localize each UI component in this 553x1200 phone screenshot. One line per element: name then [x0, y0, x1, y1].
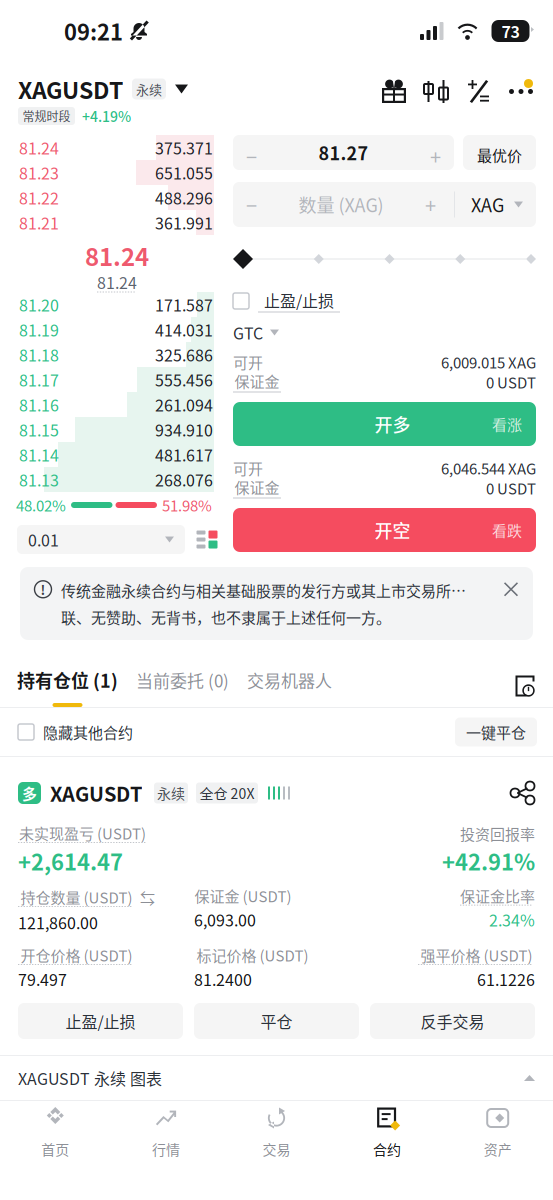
staticText: 6,009.015 XAG [441, 351, 536, 373]
staticText: 常规时段 [22, 107, 70, 125]
staticText: 全仓 20X [199, 783, 254, 803]
staticText: − [246, 141, 257, 170]
staticText: 555.456 [155, 368, 213, 391]
staticText: 一键平仓 [466, 721, 526, 743]
button[interactable]: 止盈/止损 [233, 289, 536, 313]
button[interactable]: Calculator [467, 79, 490, 104]
staticText: 81.14 [19, 443, 59, 466]
staticText: 看涨 [492, 413, 522, 435]
button[interactable]: 行情 [111, 1101, 221, 1200]
button[interactable]: 0.01 [17, 525, 185, 554]
staticText: 开仓价格 (USDT) [20, 944, 132, 966]
button[interactable]: 开多 [233, 402, 536, 446]
staticText: 止盈/止损 [264, 288, 334, 312]
staticText: 合约 [373, 1139, 401, 1159]
staticText: 标记价格 (USDT) [196, 944, 308, 966]
staticText: ⇆ [140, 887, 155, 908]
staticText: XAGUSDT [50, 778, 143, 807]
button[interactable]: Rewards [381, 79, 407, 104]
staticText: 交易机器人 [247, 668, 332, 692]
staticText: 09:21 [64, 15, 123, 47]
button[interactable]: 反手交易 [370, 1003, 535, 1039]
button[interactable]: 首页 [0, 1101, 111, 1200]
staticText: 平仓 [260, 1009, 292, 1033]
staticText: 481.617 [155, 443, 213, 466]
button[interactable]: Chart [424, 79, 448, 104]
button[interactable]: 隐藏其他合约 [18, 717, 133, 747]
button[interactable]: 合约 [332, 1101, 442, 1200]
staticText: GTC [233, 321, 263, 344]
staticText: XAGUSDT [18, 72, 123, 106]
staticText: 414.031 [155, 318, 213, 341]
staticText: 171.587 [155, 293, 213, 316]
button[interactable]: More [509, 79, 533, 104]
staticText: +42.91% [442, 845, 535, 877]
staticText: 开空 [374, 517, 410, 543]
staticText: 数量 (XAG) [298, 191, 383, 218]
button[interactable]: 止盈/止损 [18, 1003, 183, 1039]
staticText: 375.371 [155, 136, 213, 159]
staticText: 73 [501, 19, 519, 43]
staticText: 81.24 [19, 136, 59, 159]
staticText: 强平价格 (USDT) [420, 944, 532, 966]
button[interactable]: Order history [515, 675, 536, 707]
staticText: 81.16 [19, 393, 59, 416]
staticText: 81.23 [19, 161, 59, 184]
staticText: 79.497 [18, 967, 67, 991]
staticText: 交易 [262, 1139, 290, 1159]
staticText: 361.991 [155, 211, 213, 234]
staticText: 2.34% [489, 908, 535, 931]
button[interactable]: 交易机器人 [247, 667, 332, 707]
staticText: 行情 [152, 1139, 180, 1159]
staticText: 当前委托 (0) [136, 668, 229, 692]
staticText: ! [40, 580, 45, 599]
staticText: 61.1226 [477, 967, 535, 991]
button[interactable]: 平仓 [194, 1003, 359, 1039]
button[interactable]: 交易 [221, 1101, 332, 1200]
button[interactable]: Dismiss [504, 579, 519, 597]
button[interactable]: XAGUSDT 永续 图表 [0, 1056, 553, 1100]
staticText: 651.055 [155, 161, 213, 184]
staticText: 6,046.544 XAG [441, 457, 536, 479]
staticText: 0 USDT [486, 371, 536, 393]
staticText: 投资回报率 [460, 823, 535, 844]
staticText: 121,860.00 [18, 911, 98, 934]
staticText: − [246, 190, 257, 219]
staticText: 未实现盈亏 (USDT) [19, 822, 146, 844]
staticText: 81.21 [19, 211, 59, 234]
staticText: 0 USDT [486, 477, 536, 499]
button[interactable]: Depth display mode [195, 529, 219, 549]
staticText: 81.17 [19, 368, 59, 391]
staticText: 保证金 [234, 370, 279, 392]
staticText: 持有仓位 (1) [17, 667, 118, 693]
button[interactable]: 资产 [442, 1101, 553, 1200]
button[interactable]: Share [511, 782, 535, 804]
staticText: 止盈/止损 [65, 1009, 135, 1033]
staticText: 81.24 [97, 270, 137, 294]
staticText: 永续 [157, 783, 185, 803]
staticText: 永续 [136, 80, 162, 98]
staticText: 隐藏其他合约 [43, 721, 133, 743]
button[interactable]: 开空 [233, 508, 536, 552]
staticText: 81.19 [19, 318, 59, 341]
staticText: 81.22 [19, 186, 59, 209]
staticText: 最优价 [477, 144, 522, 166]
button[interactable]: 一键平仓 [455, 717, 537, 746]
staticText: 488.296 [155, 186, 213, 209]
staticText: +2,614.47 [18, 845, 123, 877]
button[interactable]: GTC [233, 322, 536, 343]
staticText: 325.686 [155, 343, 213, 366]
staticText: 0.01 [28, 528, 59, 551]
staticText: 开多 [374, 411, 410, 437]
staticText: XAG [471, 191, 504, 218]
staticText: 261.094 [155, 393, 213, 416]
staticText: 81.15 [19, 418, 59, 441]
button[interactable]: 当前委托 (0) [136, 667, 229, 707]
staticText: 保证金 [234, 476, 279, 498]
staticText: 反手交易 [420, 1009, 484, 1033]
staticText: 81.18 [19, 343, 59, 366]
staticText: 联、无赞助、无背书，也不隶属于上述任何一方。 [61, 606, 391, 628]
button[interactable]: 持有仓位 (1) [17, 667, 118, 707]
staticText: 81.2400 [194, 967, 252, 991]
staticText: XAGUSDT 永续 图表 [18, 1066, 162, 1090]
